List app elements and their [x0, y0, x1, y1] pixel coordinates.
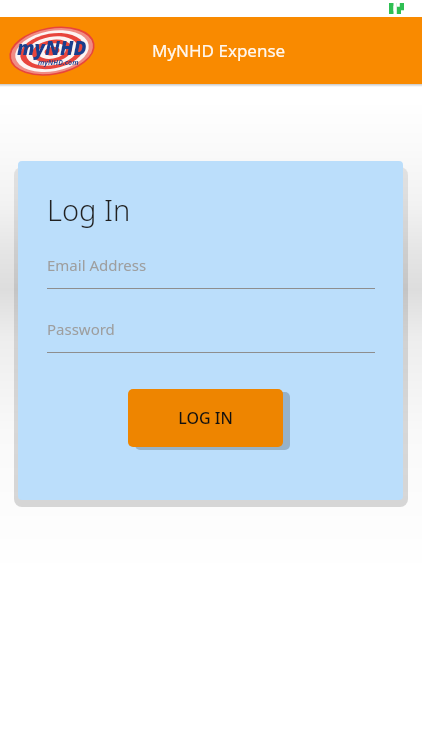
staticText: Log In	[47, 190, 131, 229]
other: Battery charging	[389, 3, 404, 14]
staticText: Password	[47, 319, 115, 339]
button[interactable]: Password	[18, 319, 403, 353]
staticText: MyNHD Expense	[152, 39, 286, 62]
staticText: LOG IN	[178, 407, 233, 429]
button[interactable]: LOG IN	[128, 389, 283, 447]
staticText: myNHD.com	[38, 58, 79, 68]
staticText: myNHD	[17, 35, 87, 61]
staticText: Email Address	[47, 255, 147, 275]
button[interactable]: myNHD logo	[8, 29, 96, 75]
button[interactable]: Email Address	[18, 255, 403, 289]
